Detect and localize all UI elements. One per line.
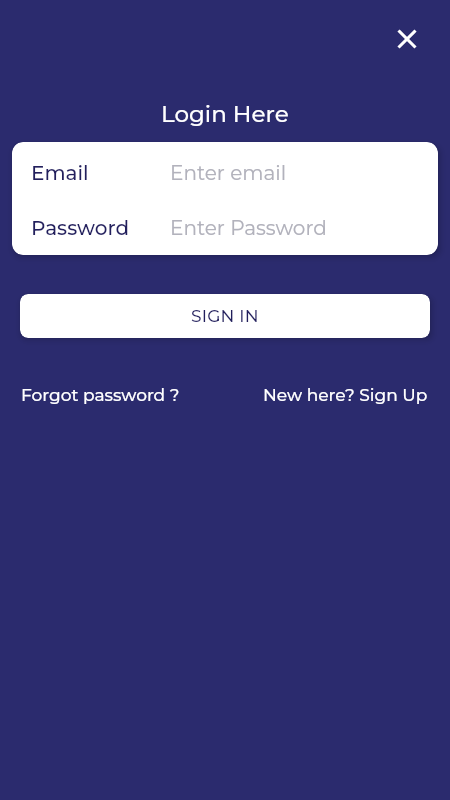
staticText: New here? Sign Up <box>263 385 428 406</box>
button[interactable]: Forgot password ? <box>21 385 180 406</box>
button[interactable]: SIGN IN <box>20 294 430 338</box>
button[interactable]: Password <box>12 203 438 253</box>
staticText: Enter Password <box>170 216 327 240</box>
staticText: Password <box>31 216 170 240</box>
button[interactable]: Email <box>12 142 438 203</box>
button[interactable]: New here? Sign Up <box>263 385 428 406</box>
staticText: Forgot password ? <box>21 385 180 406</box>
button[interactable] <box>387 19 427 59</box>
staticText: Enter email <box>170 161 287 185</box>
staticText: Login Here <box>161 100 289 128</box>
staticText: SIGN IN <box>191 306 259 327</box>
staticText: Email <box>31 161 170 185</box>
